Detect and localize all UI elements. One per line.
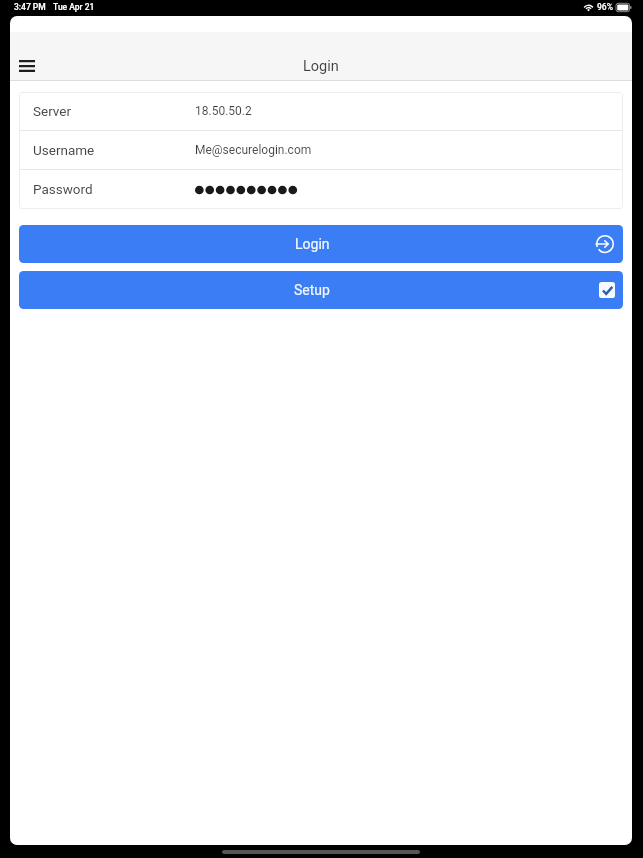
button[interactable]: Setup checkbox, checked <box>599 282 615 298</box>
staticText: Tue Apr 21 <box>53 2 95 12</box>
staticText: Username <box>33 142 95 158</box>
staticText: Me@securelogin.com <box>195 143 312 157</box>
staticText: Login <box>295 236 330 252</box>
button[interactable]: Password <box>19 170 623 209</box>
staticText: Setup <box>294 282 330 298</box>
staticText: Server <box>33 103 72 119</box>
button[interactable]: Login <box>19 225 623 263</box>
staticText: Login <box>303 58 339 75</box>
staticText: 18.50.50.2 <box>195 104 252 118</box>
staticText: Password <box>33 181 93 197</box>
staticText: 3:47 PM <box>14 2 46 12</box>
button[interactable]: Setup <box>19 271 623 309</box>
button[interactable]: Open navigation menu <box>10 51 46 81</box>
button[interactable]: Username <box>19 131 623 170</box>
button[interactable]: Server <box>19 92 623 131</box>
staticText: 96% <box>597 2 613 12</box>
